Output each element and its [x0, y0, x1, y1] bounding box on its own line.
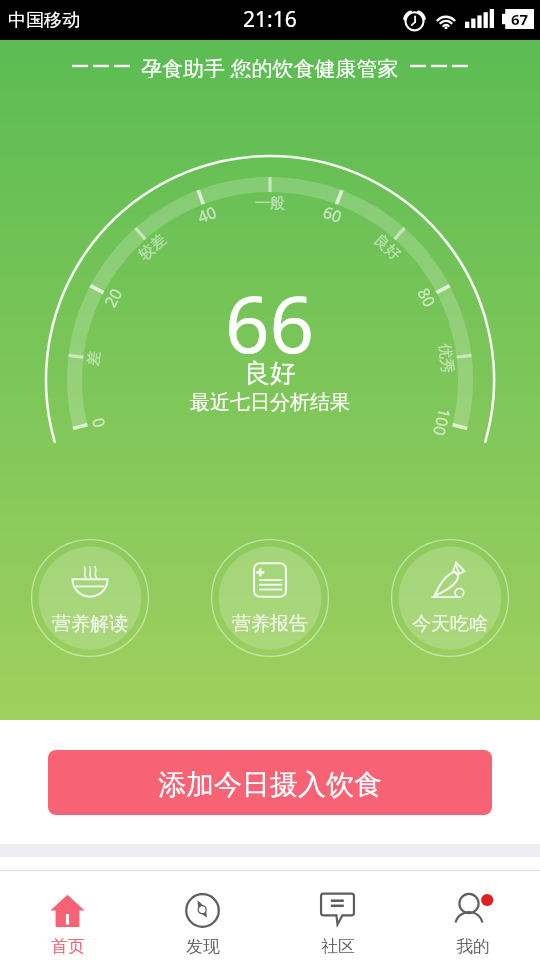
- staticText: 最近七日分析结果: [190, 390, 350, 415]
- staticText: 今天吃啥: [412, 612, 488, 636]
- staticText: 我的: [456, 936, 490, 957]
- staticText: 营养解读: [52, 612, 128, 636]
- button[interactable]: 发现: [135, 871, 270, 957]
- button[interactable]: 社区: [270, 871, 405, 957]
- staticText: 21:16: [243, 5, 297, 34]
- staticText: 社区: [321, 936, 355, 957]
- staticText: 添加今日摄入饮食: [158, 767, 382, 802]
- staticText: 营养报告: [232, 612, 308, 636]
- staticText: 中国移动: [8, 9, 80, 32]
- button[interactable]: 我的: [405, 871, 540, 957]
- staticText: 66: [225, 270, 315, 376]
- staticText: 孕食助手 您的饮食健康管家: [141, 54, 399, 78]
- staticText: 发现: [186, 936, 220, 957]
- staticText: 良好: [244, 357, 296, 390]
- button[interactable]: 添加今日摄入饮食: [48, 750, 492, 815]
- staticText: 首页: [51, 936, 85, 957]
- staticText: 67: [511, 9, 529, 29]
- button[interactable]: 营养解读: [31, 539, 149, 657]
- button[interactable]: 今天吃啥: [391, 539, 509, 657]
- button[interactable]: 营养报告: [211, 539, 329, 657]
- button[interactable]: 首页: [0, 871, 135, 957]
